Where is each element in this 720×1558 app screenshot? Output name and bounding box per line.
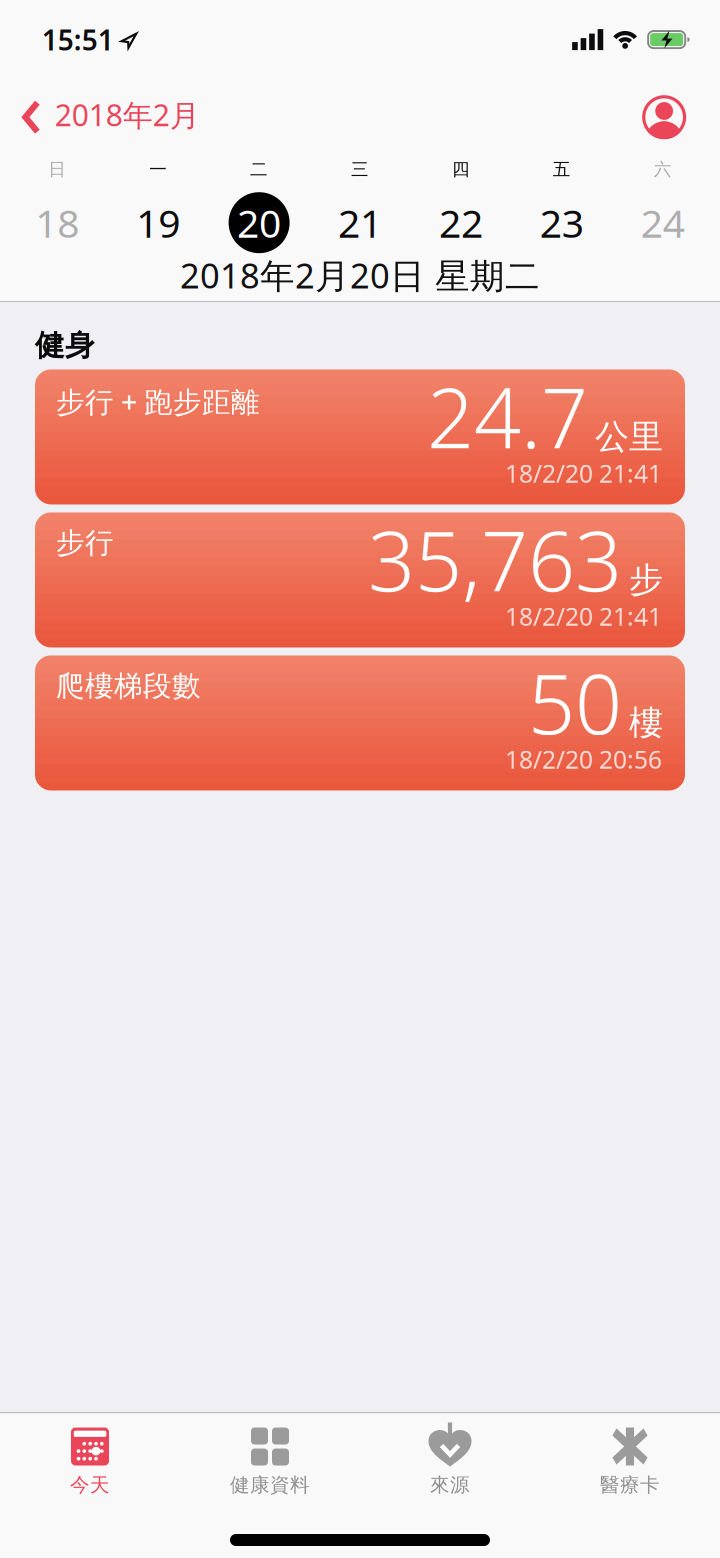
staticText: 健身 [35, 327, 95, 363]
staticText: 18/2/20 21:41 [505, 457, 662, 489]
staticText: 20 [237, 197, 281, 249]
button[interactable]: 2018年2月18日 [7, 192, 108, 253]
staticText: 來源 [430, 1473, 470, 1497]
staticText: 日 [48, 159, 66, 180]
button[interactable]: 返回 2018年2月 [22, 97, 200, 137]
staticText: 樓 [629, 702, 663, 744]
staticText: 五 [553, 159, 571, 180]
button[interactable]: 2018年2月21日 [310, 192, 410, 253]
staticText: 15:51 [42, 21, 114, 58]
button[interactable]: 2018年2月19日 [108, 192, 209, 253]
staticText: 18/2/20 20:56 [505, 743, 662, 775]
staticText: 18 [35, 197, 79, 249]
button[interactable]: 個人檔案 [642, 95, 686, 139]
staticText: 爬樓梯段數 [56, 668, 201, 703]
button[interactable]: 2018年2月23日 [511, 192, 612, 253]
button[interactable]: 步行 [35, 512, 685, 647]
staticText: 公里 [595, 416, 663, 458]
staticText: 50 [528, 647, 622, 757]
staticText: 2018年2月 [55, 95, 200, 135]
staticText: 21 [338, 197, 382, 249]
staticText: 二 [250, 159, 268, 180]
staticText: 醫療卡 [600, 1473, 660, 1497]
button[interactable]: 2018年2月24日 [612, 192, 713, 253]
button[interactable]: 醫療卡 [540, 1427, 720, 1497]
staticText: 一 [149, 159, 167, 180]
staticText: 六 [654, 159, 672, 180]
staticText: 18/2/20 21:41 [505, 600, 662, 632]
staticText: 四 [452, 159, 470, 180]
button[interactable]: 來源 [360, 1427, 540, 1497]
staticText: 23 [540, 197, 584, 249]
button[interactable]: 今天 [0, 1427, 180, 1497]
staticText: 健康資料 [230, 1473, 310, 1497]
staticText: 三 [351, 159, 369, 180]
staticText: 今天 [70, 1473, 110, 1497]
button[interactable]: 2018年2月22日 [410, 192, 511, 253]
staticText: 步 [629, 559, 663, 601]
staticText: 24 [641, 197, 685, 249]
button[interactable]: 2018年2月20日 [209, 192, 310, 253]
button[interactable]: 健康資料 [180, 1427, 360, 1497]
button[interactable]: 爬樓梯段數 [35, 655, 685, 790]
staticText: 步行 [56, 525, 114, 560]
staticText: 35,763 [368, 504, 622, 614]
staticText: 2018年2月20日 星期二 [180, 252, 540, 298]
staticText: 步行 + 跑步距離 [56, 382, 260, 420]
button[interactable]: 步行 + 跑步距離 [35, 369, 685, 504]
staticText: 19 [136, 197, 180, 249]
staticText: 24.7 [427, 361, 588, 471]
staticText: 22 [439, 197, 483, 249]
